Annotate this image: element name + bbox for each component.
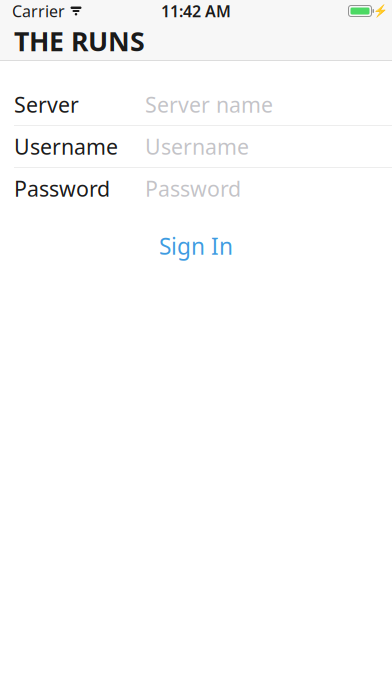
staticText: 11:42 AM xyxy=(161,0,231,22)
button[interactable]: Password xyxy=(0,168,392,210)
staticText: Server name xyxy=(145,90,273,119)
staticText: Password xyxy=(145,174,241,203)
staticText: ⚡ xyxy=(373,4,388,18)
staticText: THE RUNS xyxy=(14,23,145,59)
staticText: Username xyxy=(14,132,118,161)
button[interactable]: Server xyxy=(0,84,392,126)
staticText: Carrier xyxy=(12,0,65,22)
button[interactable]: Username xyxy=(0,126,392,168)
staticText: Server xyxy=(14,90,79,119)
staticText: Password xyxy=(14,174,110,203)
staticText: Sign In xyxy=(159,231,233,261)
button[interactable]: Sign In xyxy=(0,231,392,261)
staticText: Username xyxy=(145,132,249,161)
